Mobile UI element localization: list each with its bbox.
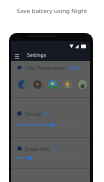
button[interactable]: Density: <box>11 108 90 119</box>
button[interactable]: Colour preset <box>33 80 42 89</box>
button[interactable]: Colour preset <box>63 80 72 89</box>
staticText: Density: <box>25 111 43 117</box>
staticText: 1/1 <box>51 146 58 152</box>
button[interactable]: Open navigation menu <box>11 50 23 61</box>
staticText: 7000K <box>67 65 80 71</box>
button[interactable] <box>11 153 90 163</box>
button[interactable]: Colour preset <box>78 80 87 89</box>
button[interactable]: Colour preset <box>18 80 27 89</box>
button[interactable]: Screen Dim: <box>11 143 90 154</box>
staticText: Color Temperature: <box>25 65 67 71</box>
button[interactable] <box>11 120 90 130</box>
staticText: Screen Dim: <box>25 146 51 152</box>
staticText: 5/5 <box>43 111 50 117</box>
button[interactable]: Colour preset <box>48 80 57 89</box>
button[interactable]: Color Temperature: <box>11 62 90 73</box>
staticText: Settings <box>27 52 47 59</box>
staticText: Save battery using Night <box>0 6 104 14</box>
